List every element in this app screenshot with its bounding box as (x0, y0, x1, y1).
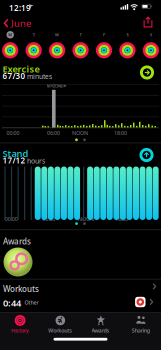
button[interactable]: Day T (25, 31, 42, 58)
staticText: T (33, 32, 35, 37)
button[interactable]: Stand detail (139, 148, 153, 162)
button[interactable]: Workouts (41, 316, 79, 333)
staticText: 06:00 (47, 129, 60, 136)
button[interactable]: Day W (49, 31, 65, 58)
button[interactable]: Share (143, 16, 153, 28)
staticText: Workouts (48, 327, 72, 334)
staticText: minutes (27, 72, 52, 81)
button[interactable]: History (1, 316, 39, 333)
staticText: Stand (2, 147, 28, 160)
button[interactable]: Day S (143, 31, 159, 58)
button[interactable]: Workouts (0, 279, 161, 290)
staticText: 67/30 (2, 71, 25, 81)
button[interactable]: Exercise detail (140, 65, 154, 79)
button[interactable]: 0:44 (0, 295, 161, 309)
staticText: 06:00 (42, 215, 55, 222)
staticText: NOON (72, 129, 88, 136)
button[interactable]: Day F (96, 31, 112, 58)
staticText: 18:00 (115, 215, 128, 222)
staticText: 0:44 (3, 297, 21, 309)
staticText: hours (27, 156, 45, 165)
staticText: NOON (78, 215, 94, 222)
staticText: June (11, 17, 31, 29)
staticText: Awards (3, 236, 31, 247)
staticText: Sharing (132, 327, 150, 334)
staticText: 00:00 (5, 215, 18, 222)
staticText: S (126, 32, 128, 37)
staticText: W (55, 32, 59, 37)
button[interactable]: Day S (119, 31, 136, 58)
staticText: 18:00 (114, 129, 127, 136)
button[interactable]: Day M (2, 31, 18, 58)
staticText: Workouts (3, 284, 39, 294)
button[interactable]: Sharing (122, 316, 160, 333)
button[interactable]: Award (3, 247, 33, 277)
staticText: M (8, 32, 12, 37)
button[interactable]: Day T (72, 31, 89, 58)
staticText: Exercise (2, 63, 39, 75)
button[interactable]: Awards (82, 316, 120, 333)
staticText: 00:00 (6, 129, 19, 136)
staticText: Awards (92, 327, 110, 334)
button[interactable]: June (3, 17, 31, 29)
staticText: T (79, 32, 81, 37)
staticText: F (103, 32, 105, 37)
staticText: 17/12 (2, 155, 25, 166)
staticText: Other (25, 299, 39, 306)
staticText: MYZONE® (47, 83, 66, 88)
staticText: S (150, 32, 152, 37)
staticText: 12:19 (9, 2, 31, 13)
staticText: History (11, 327, 29, 334)
